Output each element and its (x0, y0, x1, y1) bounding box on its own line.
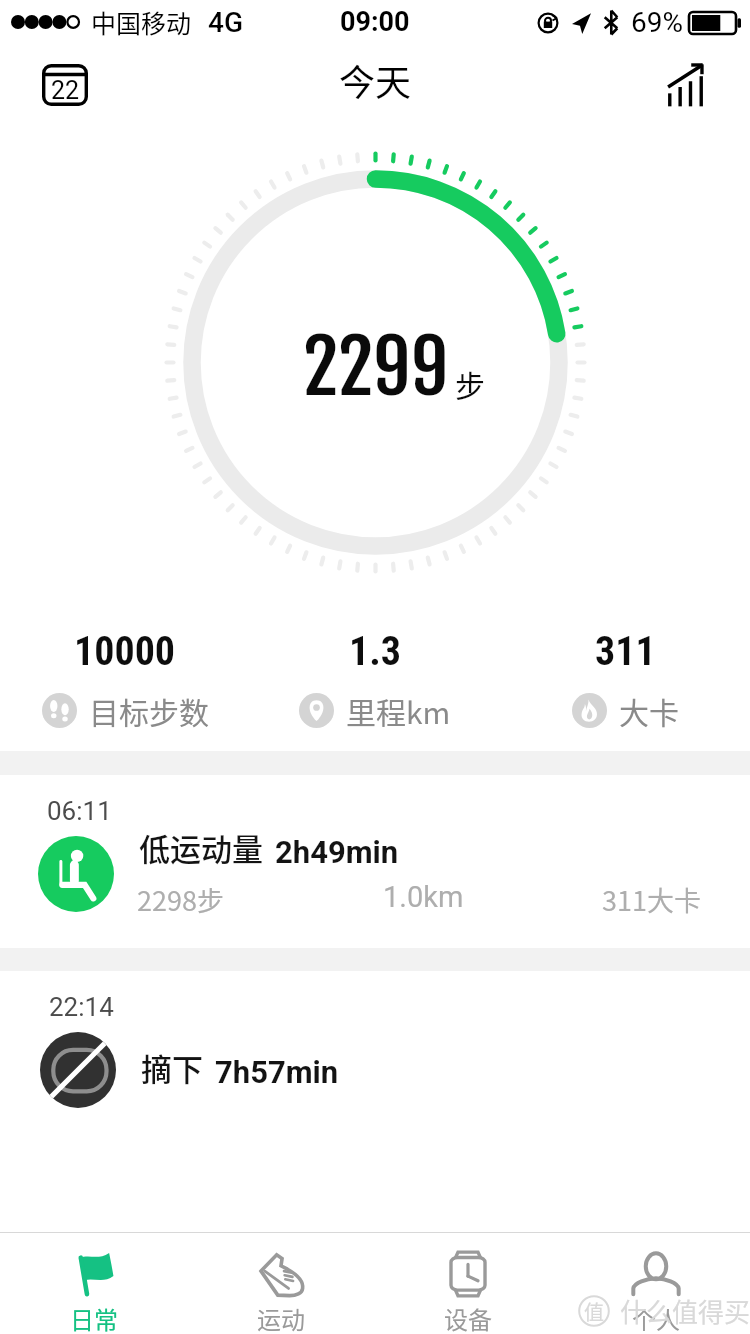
button[interactable]: 10000 (0, 628, 250, 748)
staticText: 运动 (257, 1301, 305, 1334)
staticText: 设备 (444, 1301, 492, 1334)
staticText: 1.3 (349, 628, 402, 675)
button[interactable]: 运动 (187, 1233, 374, 1334)
staticText: 06:11 (47, 796, 112, 826)
button[interactable]: Statistics (653, 53, 717, 117)
staticText: 摘下 (141, 1045, 203, 1090)
staticText: 4G (208, 6, 243, 39)
staticText: 目标步数 (89, 689, 209, 732)
staticText: 里程km (346, 689, 451, 732)
staticText: 2h49min (275, 834, 399, 870)
staticText: 大卡 (619, 689, 679, 732)
staticText: 什么值得买 (620, 1292, 750, 1330)
button[interactable]: 个人 (562, 1233, 750, 1334)
button[interactable]: 311 (500, 628, 750, 748)
staticText: 值 (584, 1297, 604, 1326)
staticText: 7h57min (215, 1054, 339, 1090)
button[interactable]: 日常 (0, 1233, 187, 1334)
staticText: 311大卡 (602, 880, 701, 919)
staticText: 1.0km (383, 880, 602, 914)
staticText: 低运动量 (139, 825, 263, 870)
staticText: 步 (455, 362, 485, 405)
staticText: 311 (595, 628, 656, 675)
staticText: 今天 (339, 54, 412, 106)
staticText: 10000 (74, 628, 176, 675)
button[interactable]: 22:14 (0, 971, 750, 1131)
staticText: 09:00 (340, 6, 410, 38)
button[interactable]: Calendar (27, 47, 103, 123)
button[interactable]: 1.3 (250, 628, 500, 748)
staticText: 个人 (632, 1301, 680, 1334)
staticText: 22:14 (49, 992, 114, 1022)
staticText: 日常 (70, 1301, 118, 1334)
staticText: 69% (631, 6, 683, 39)
staticText: 2298步 (137, 880, 383, 919)
button[interactable]: 设备 (374, 1233, 562, 1334)
staticText: 中国移动 (91, 4, 192, 40)
staticText: 2299 (303, 320, 449, 413)
staticText: 22 (51, 76, 80, 105)
button[interactable]: 06:11 (0, 775, 750, 948)
